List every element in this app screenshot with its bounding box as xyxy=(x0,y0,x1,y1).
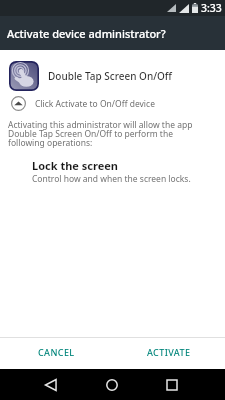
staticText: ACTIVATE xyxy=(147,346,191,358)
staticText: 3:33 xyxy=(201,1,222,15)
button[interactable]: Double Tap Screen On/Off xyxy=(9,61,225,91)
staticText: Double Tap Screen On/Off xyxy=(48,69,172,83)
button[interactable] xyxy=(157,370,187,400)
staticText: CANCEL xyxy=(38,346,75,358)
staticText: Activate device administrator? xyxy=(7,26,166,41)
staticText: Lock the screen xyxy=(32,158,118,173)
staticText: Click Activate to On/Off device xyxy=(35,98,155,110)
button[interactable]: CANCEL xyxy=(0,338,112,369)
staticText: Activating this administrator will allow… xyxy=(8,119,193,149)
button[interactable] xyxy=(9,61,39,91)
button[interactable]: ACTIVATE xyxy=(112,338,225,369)
button[interactable] xyxy=(36,370,66,400)
staticText: Control how and when the screen locks. xyxy=(32,173,191,185)
button[interactable] xyxy=(11,96,26,111)
button[interactable]: Click Activate to On/Off device xyxy=(11,96,225,111)
button[interactable] xyxy=(97,370,127,400)
